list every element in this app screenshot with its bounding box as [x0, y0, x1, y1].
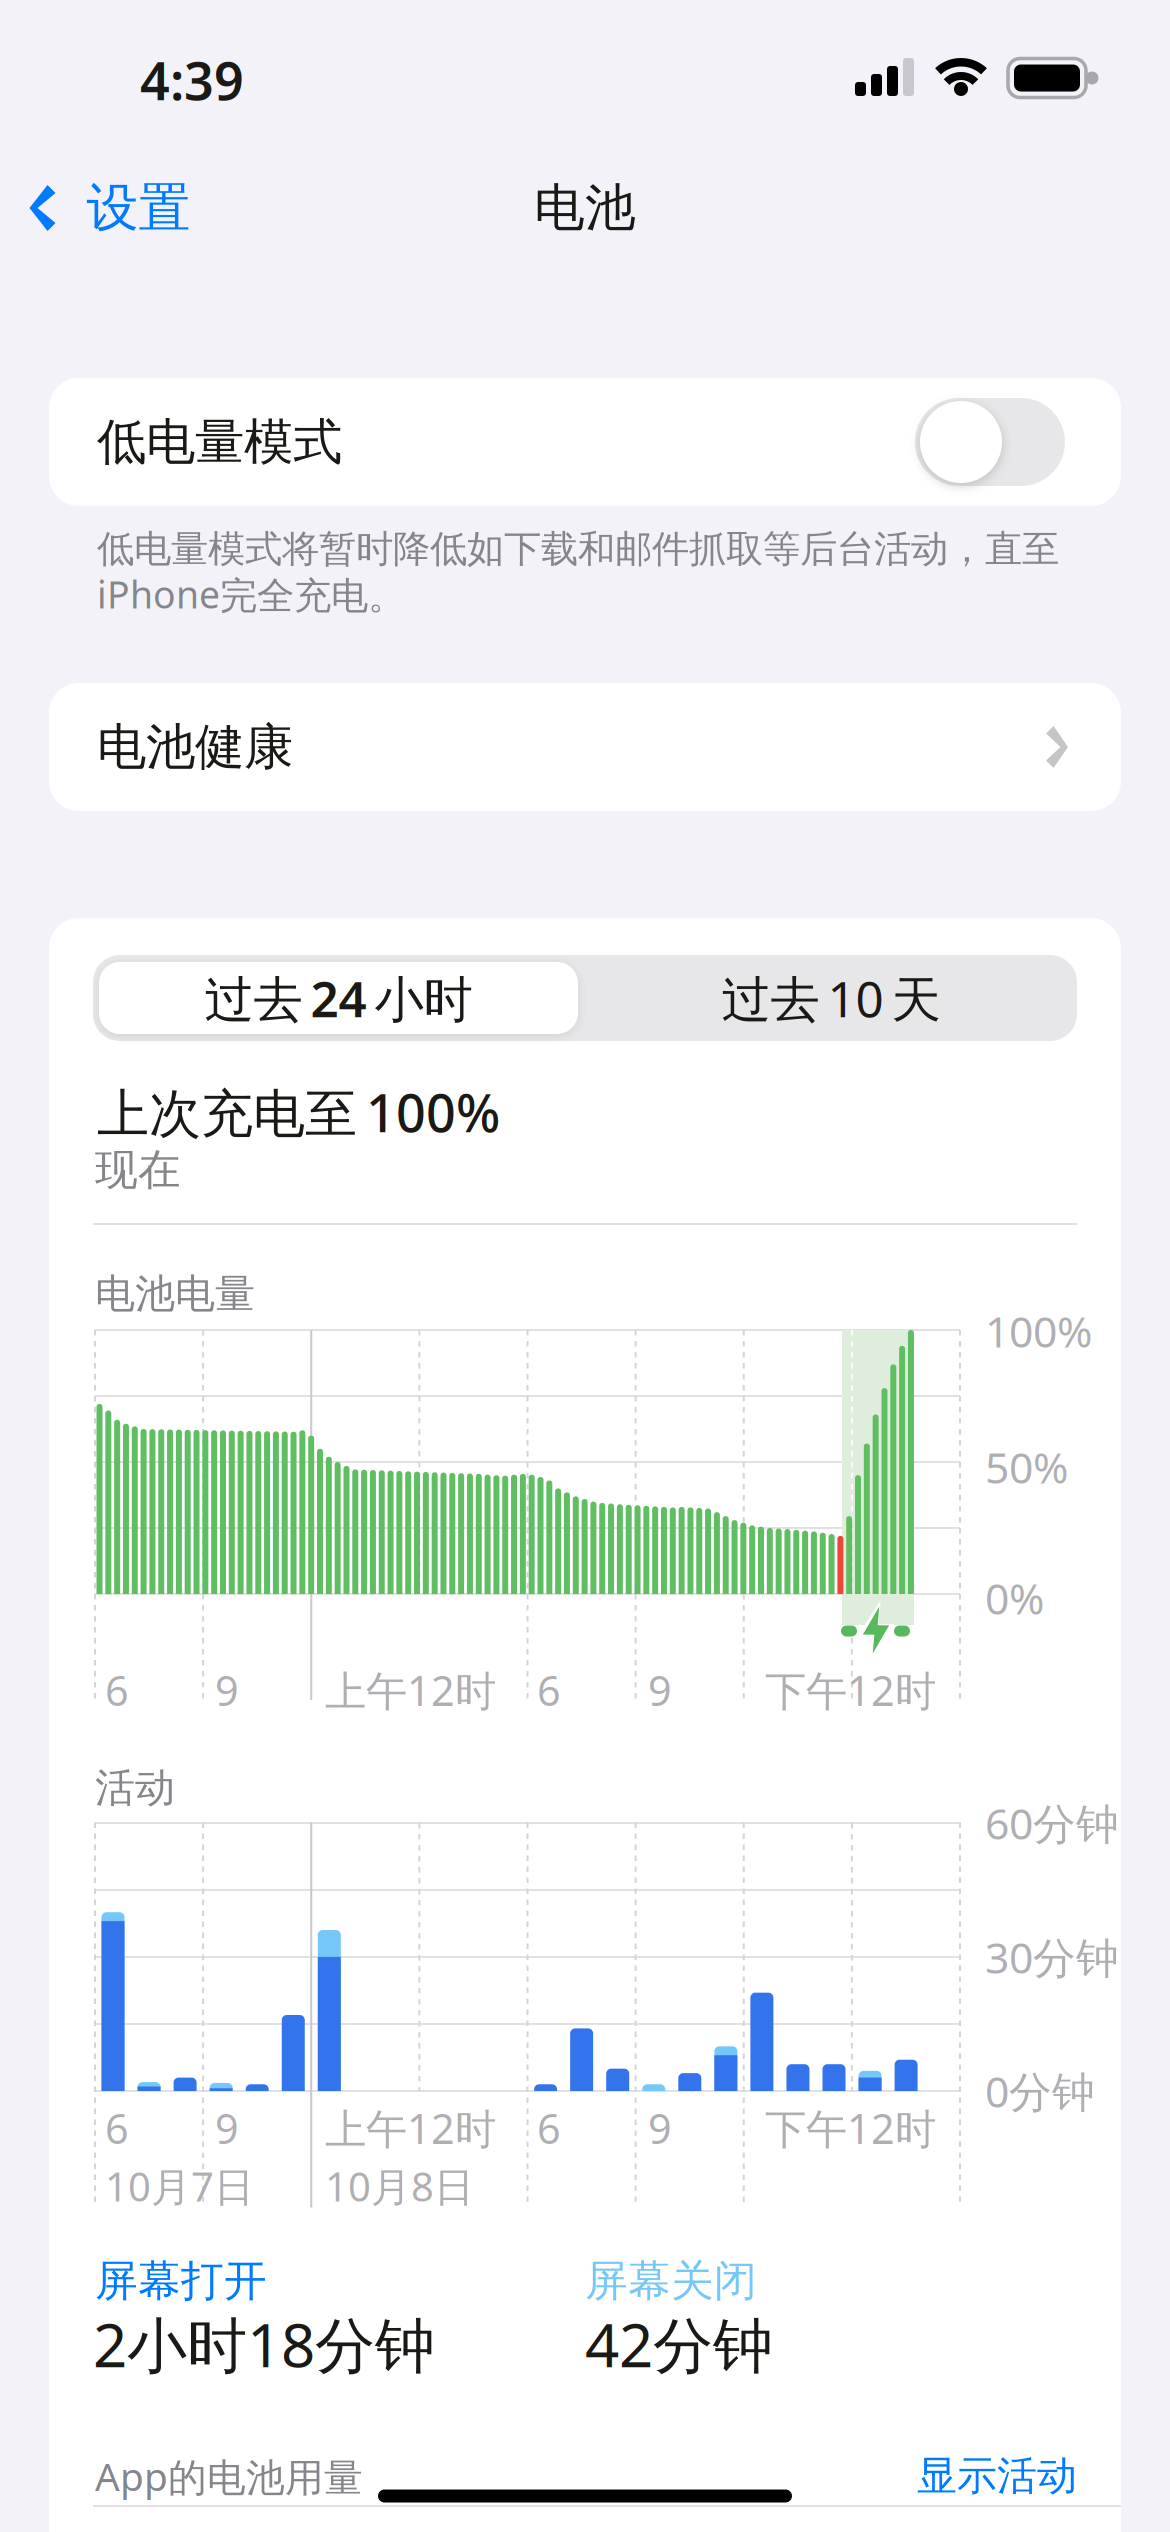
staticText: 上午12时	[325, 2101, 496, 2155]
button[interactable]: 设置	[29, 176, 190, 240]
staticText: 6	[105, 1663, 129, 1717]
staticText: 电池	[534, 177, 636, 239]
staticText: 2小时18分钟	[93, 2304, 435, 2384]
staticText: 过去 24 小时	[204, 965, 472, 1031]
button[interactable]: 过去 10 天	[591, 962, 1070, 1034]
staticText: 电池电量	[95, 1269, 255, 1318]
staticText: 电池健康	[97, 717, 293, 777]
staticText: 屏幕打开	[95, 2255, 267, 2307]
staticText: 9	[215, 1663, 239, 1717]
staticText: 下午12时	[765, 2101, 936, 2155]
staticText: 上次充电至 100%	[97, 1077, 500, 1147]
staticText: 显示活动	[917, 2451, 1077, 2500]
staticText: 屏幕关闭	[585, 2255, 757, 2307]
button[interactable]: 低电量模式	[49, 378, 1121, 506]
staticText: 上午12时	[325, 1663, 496, 1717]
staticText: 10月7日	[105, 2159, 254, 2212]
staticText: 9	[215, 2101, 239, 2155]
staticText: 50%	[985, 1439, 1068, 1495]
staticText: 0%	[985, 1570, 1044, 1626]
staticText: 42分钟	[585, 2304, 773, 2384]
staticText: 低电量模式	[97, 412, 342, 472]
button[interactable]: 显示活动	[777, 2451, 1077, 2500]
staticText: 100%	[985, 1303, 1092, 1359]
staticText: 6	[537, 2101, 561, 2155]
staticText: 0分钟	[985, 2063, 1095, 2119]
staticText: 6	[537, 1663, 561, 1717]
staticText: iPhone完全充电。	[97, 569, 405, 619]
staticText: 60分钟	[985, 1795, 1119, 1851]
staticText: App的电池用量	[95, 2450, 363, 2502]
staticText: 9	[648, 2101, 672, 2155]
staticText: 4:39	[140, 45, 244, 115]
staticText: 现在	[95, 1144, 181, 1196]
staticText: 9	[648, 1663, 672, 1717]
staticText: 30分钟	[985, 1929, 1119, 1985]
staticText: 6	[105, 2101, 129, 2155]
staticText: 活动	[95, 1763, 175, 1812]
staticText: 设置	[86, 176, 190, 240]
button[interactable]: 过去 24 小时	[99, 962, 578, 1034]
staticText: 下午12时	[765, 1663, 936, 1717]
staticText: 低电量模式将暂时降低如下载和邮件抓取等后台活动，直至	[97, 526, 1059, 572]
button[interactable]: 电池健康	[49, 683, 1121, 811]
staticText: 10月8日	[325, 2159, 474, 2212]
staticText: 过去 10 天	[721, 965, 940, 1031]
